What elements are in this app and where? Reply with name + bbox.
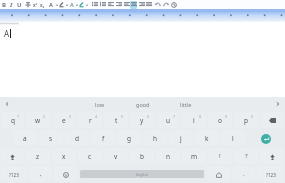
staticText: v xyxy=(114,152,118,161)
button[interactable]: Font colour xyxy=(68,0,75,9)
button[interactable]: Align right xyxy=(138,0,145,9)
button[interactable]: ? xyxy=(234,148,258,164)
button[interactable]: k xyxy=(195,130,219,146)
button[interactable]: ! xyxy=(208,148,232,164)
staticText: 2 xyxy=(43,114,46,119)
button[interactable]: Underline xyxy=(16,0,23,9)
button[interactable]: Justify xyxy=(145,0,152,9)
staticText: n xyxy=(166,152,171,161)
staticText: b xyxy=(140,152,144,161)
button[interactable]: Enter xyxy=(246,129,285,147)
button[interactable]: g xyxy=(117,130,141,146)
button[interactable]: good xyxy=(121,97,164,111)
button[interactable]: i xyxy=(182,112,206,128)
button[interactable]: Redo xyxy=(162,0,169,9)
button[interactable]: f xyxy=(91,130,115,146)
button[interactable]: ?123 xyxy=(257,166,284,182)
staticText: A xyxy=(4,28,10,39)
button[interactable]: Bold xyxy=(0,0,7,9)
button[interactable]: Highlight colour xyxy=(58,0,65,9)
button[interactable]: Text colour xyxy=(47,0,54,9)
button[interactable]: Pen colour xyxy=(78,0,85,9)
button[interactable]: m xyxy=(182,148,206,164)
staticText: x xyxy=(62,152,66,161)
button[interactable]: ?123 xyxy=(1,166,27,182)
button[interactable]: n xyxy=(156,148,180,164)
button[interactable]: Emoji xyxy=(54,166,77,182)
button[interactable]: e xyxy=(52,112,76,128)
button[interactable]: v xyxy=(104,148,128,164)
button[interactable]: s xyxy=(39,130,63,146)
staticText: A xyxy=(49,1,53,8)
button[interactable]: l xyxy=(221,130,245,146)
button[interactable]: x xyxy=(52,148,76,164)
button[interactable]: j xyxy=(169,130,193,146)
button[interactable]: History xyxy=(170,0,177,9)
staticText: r xyxy=(89,116,92,125)
staticText: q xyxy=(11,116,15,125)
button[interactable]: w xyxy=(26,112,50,128)
staticText: 8 xyxy=(199,114,202,119)
staticText: w xyxy=(35,116,41,125)
button[interactable]: Shift xyxy=(1,148,24,164)
staticText: z xyxy=(36,152,40,161)
button[interactable]: y xyxy=(130,112,154,128)
button[interactable]: More suggestions xyxy=(271,97,285,111)
staticText: English xyxy=(136,172,149,177)
staticText: d xyxy=(75,134,79,143)
staticText: g xyxy=(127,134,131,143)
button[interactable]: Text colour menu xyxy=(53,0,60,9)
button[interactable]: r xyxy=(78,112,102,128)
button[interactable]: , xyxy=(29,166,52,182)
staticText: l xyxy=(232,134,234,143)
button[interactable]: p xyxy=(234,112,258,128)
button[interactable]: o xyxy=(208,112,232,128)
staticText: ! xyxy=(219,152,221,160)
button[interactable]: z xyxy=(26,148,50,164)
staticText: B xyxy=(2,1,6,9)
button[interactable]: low xyxy=(78,97,121,111)
button[interactable]: u xyxy=(156,112,180,128)
button[interactable]: q xyxy=(1,112,24,128)
staticText: u xyxy=(166,116,171,125)
button[interactable]: Italic xyxy=(8,0,15,9)
button[interactable]: Bulleted list xyxy=(91,0,98,9)
button[interactable]: Strikethrough xyxy=(24,0,31,9)
button[interactable]: Space xyxy=(80,170,204,178)
staticText: low xyxy=(95,101,104,108)
staticText: o xyxy=(218,116,222,125)
staticText: 7 xyxy=(173,114,176,119)
button[interactable]: h xyxy=(143,130,167,146)
staticText: h xyxy=(153,134,158,143)
button[interactable]: Undo xyxy=(154,0,161,9)
staticText: p xyxy=(244,116,248,125)
button[interactable]: Previous suggestions xyxy=(0,97,14,111)
button[interactable]: Align centre xyxy=(130,0,137,9)
staticText: U xyxy=(17,1,22,9)
button[interactable]: Highlight colour menu xyxy=(63,0,70,9)
button[interactable]: Backspace xyxy=(260,112,284,128)
button[interactable]: Subscript xyxy=(39,0,46,9)
button[interactable]: Superscript xyxy=(32,0,39,9)
staticText: ? xyxy=(245,152,248,160)
staticText: , xyxy=(40,170,42,178)
staticText: 9 xyxy=(225,114,228,119)
staticText: ?123 xyxy=(9,172,19,178)
button[interactable]: Pen colour menu xyxy=(83,0,90,9)
button[interactable]: Caps lock xyxy=(260,148,284,164)
button[interactable]: Align left xyxy=(123,0,130,9)
button[interactable]: c xyxy=(78,148,102,164)
button[interactable]: Numbered list xyxy=(99,0,106,9)
staticText: . xyxy=(243,170,245,178)
button[interactable]: d xyxy=(65,130,89,146)
button[interactable]: t xyxy=(104,112,128,128)
button[interactable]: Decrease indent xyxy=(107,0,114,9)
button[interactable]: little xyxy=(164,97,207,111)
button[interactable]: a xyxy=(13,130,37,146)
button[interactable]: Settings xyxy=(207,166,230,182)
button[interactable]: Font colour menu xyxy=(73,0,80,9)
button[interactable]: b xyxy=(130,148,154,164)
staticText: 5 xyxy=(121,114,124,119)
button[interactable]: Increase indent xyxy=(115,0,122,9)
